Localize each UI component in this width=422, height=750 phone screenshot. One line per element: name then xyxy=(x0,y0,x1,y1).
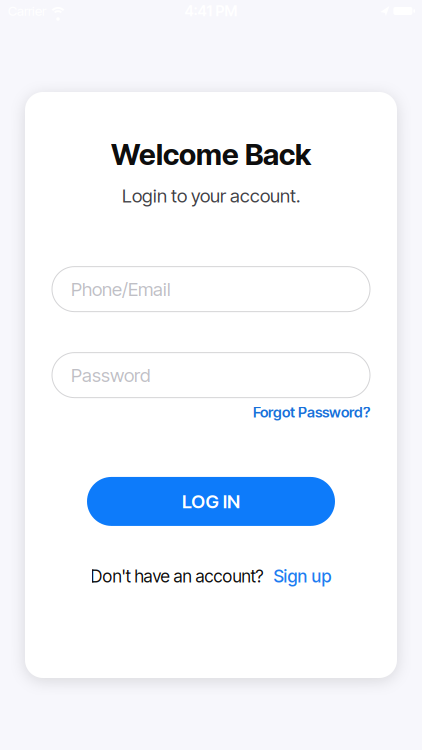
button[interactable]: Password xyxy=(52,353,370,398)
button[interactable]: Phone/Email xyxy=(52,267,370,312)
staticText: Login to your account. xyxy=(122,185,300,207)
staticText: Sign up xyxy=(273,566,331,586)
staticText: Don't have an account? xyxy=(90,566,263,586)
button[interactable]: Forgot Password? xyxy=(253,404,370,421)
button[interactable]: LOG IN xyxy=(87,477,335,526)
staticText: Forgot Password? xyxy=(253,404,370,421)
staticText: LOG IN xyxy=(182,490,240,512)
button[interactable]: Sign up xyxy=(273,566,331,586)
staticText: Password xyxy=(71,364,150,386)
staticText: Phone/Email xyxy=(71,278,171,300)
staticText: Welcome Back xyxy=(111,137,311,172)
